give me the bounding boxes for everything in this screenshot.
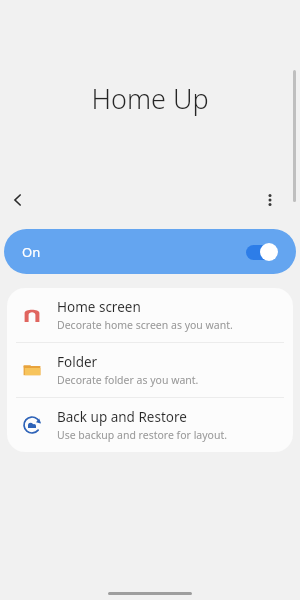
staticText: On	[22, 243, 41, 261]
staticText: Decorate folder as you want.	[57, 373, 199, 387]
button[interactable]: Home screen	[7, 288, 293, 342]
staticText: Home Up	[91, 80, 209, 117]
button[interactable]: Folder	[7, 343, 293, 397]
button[interactable]: On	[4, 229, 296, 274]
staticText: Home screen	[57, 298, 141, 316]
staticText: Use backup and restore for layout.	[57, 428, 228, 442]
button[interactable]: Back	[0, 182, 36, 218]
staticText: Folder	[57, 353, 98, 371]
staticText: Back up and Restore	[57, 408, 187, 426]
staticText: Decorate home screen as you want.	[57, 318, 233, 332]
button[interactable]: More options	[252, 182, 288, 218]
button[interactable]: Back up and Restore	[7, 398, 293, 452]
